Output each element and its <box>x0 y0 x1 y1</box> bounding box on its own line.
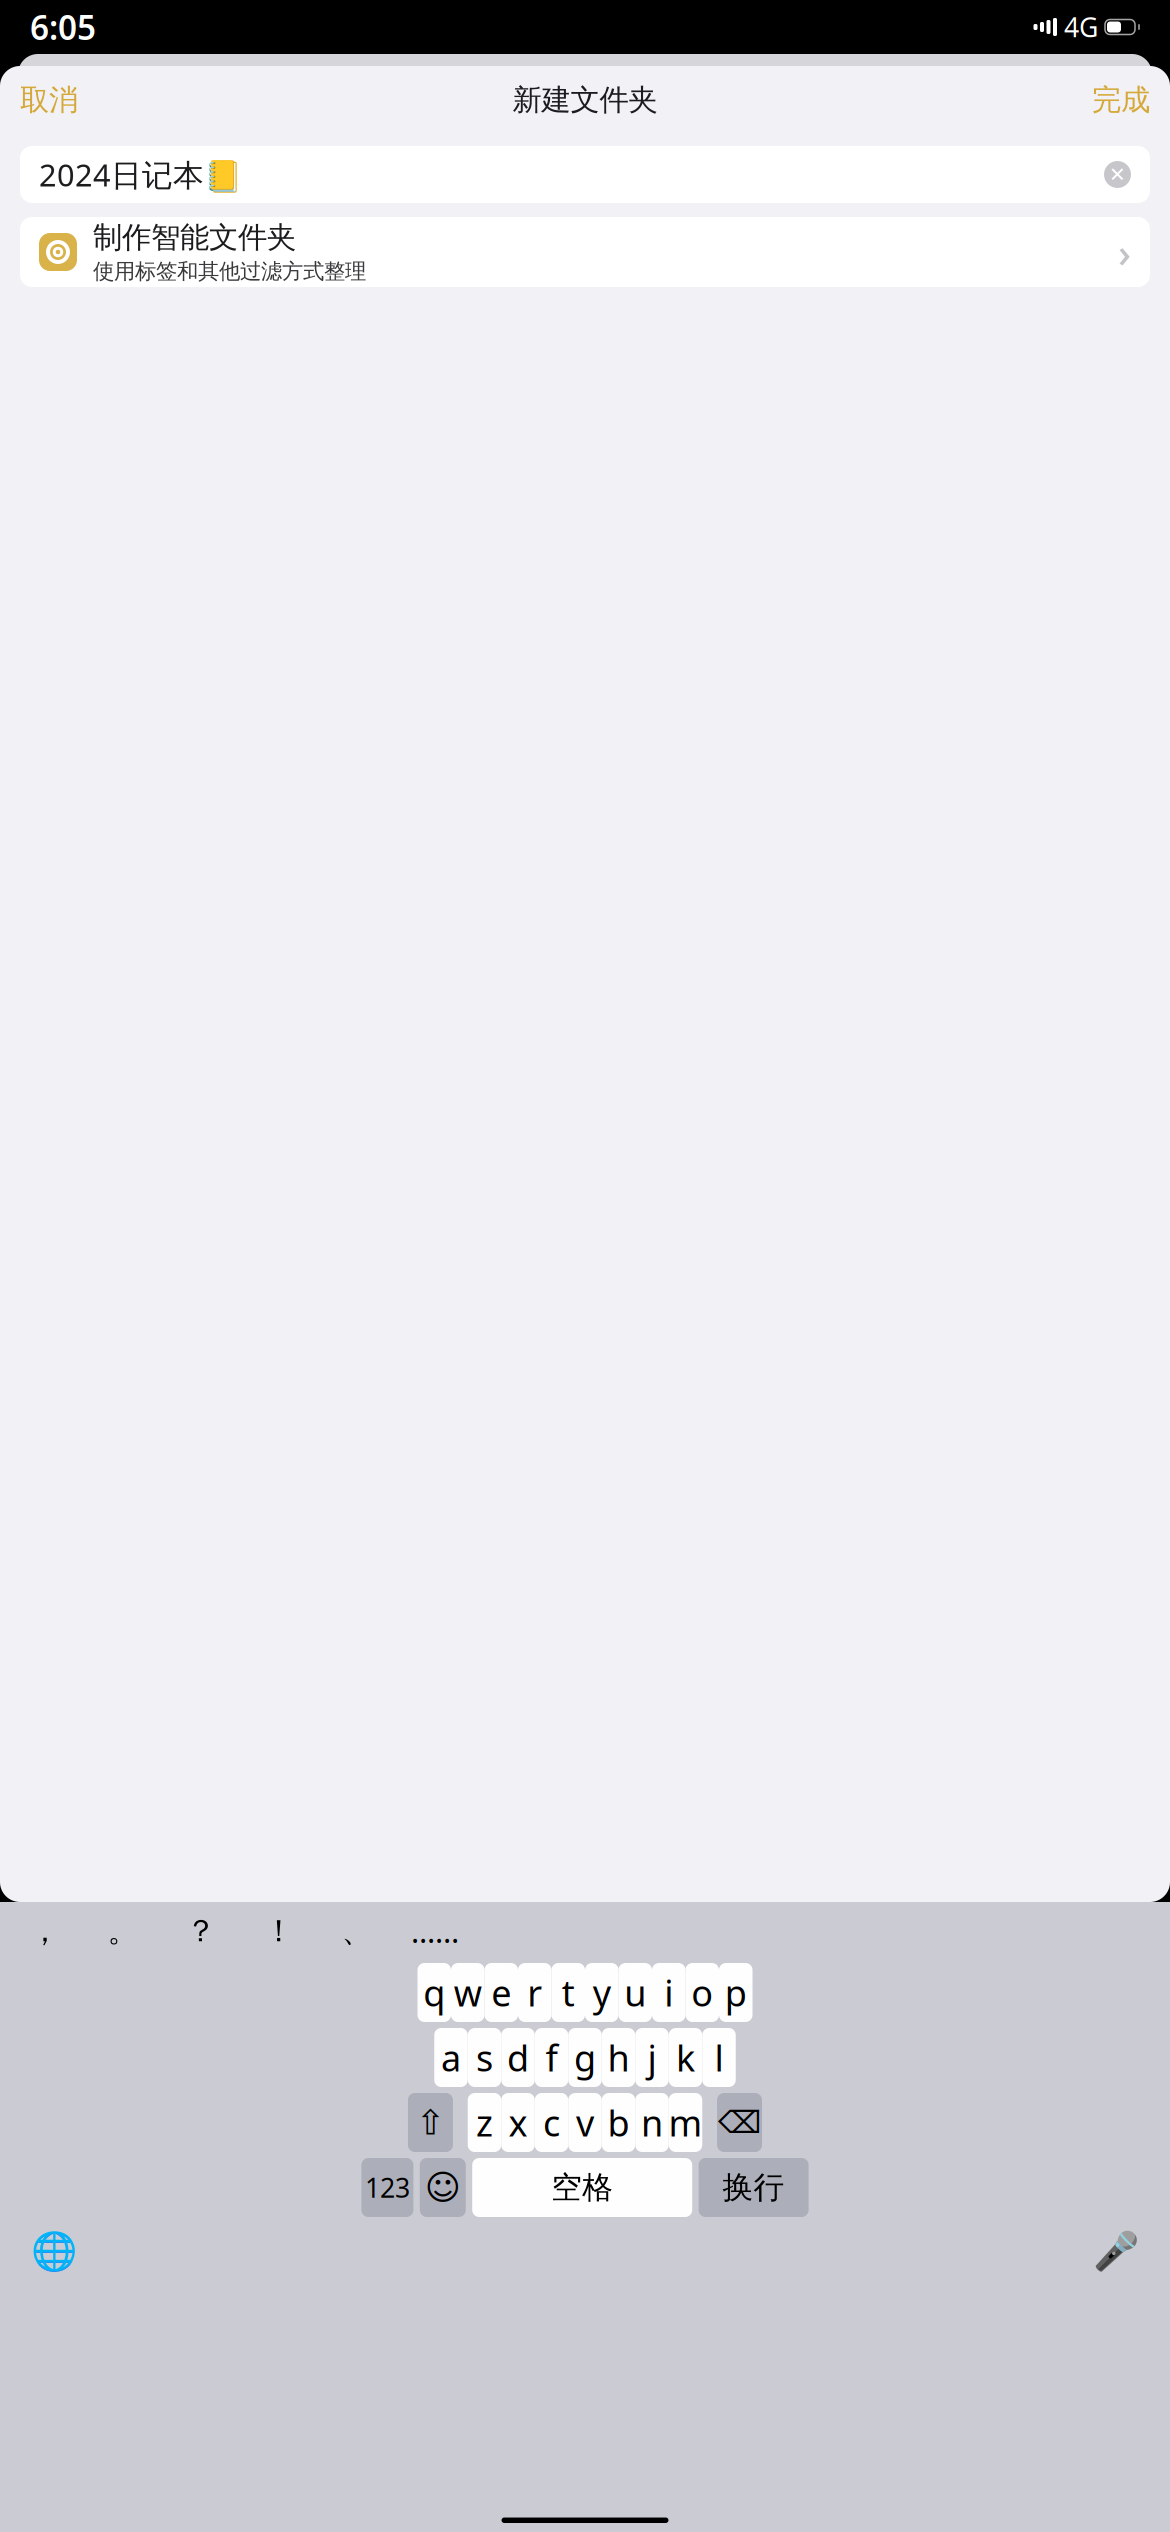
staticText: 换行 <box>723 2169 785 2206</box>
button[interactable]: q <box>417 1963 451 2022</box>
staticText: d <box>507 2034 529 2081</box>
button[interactable]: s <box>468 2028 501 2087</box>
staticText: f <box>545 2034 557 2081</box>
staticText: 🎤 <box>1093 2230 1139 2272</box>
staticText: ✕ <box>1109 163 1126 186</box>
staticText: z <box>476 2099 493 2146</box>
button[interactable]: ⌫ <box>717 2093 762 2152</box>
staticText: ？ <box>185 1912 216 1950</box>
button[interactable]: 取消 <box>14 76 84 124</box>
button[interactable]: 清除文本 <box>1104 161 1131 188</box>
staticText: l <box>714 2034 723 2081</box>
staticText: 、 <box>341 1912 372 1950</box>
button[interactable]: t <box>551 1963 585 2022</box>
button[interactable]: 123 <box>361 2158 413 2217</box>
button[interactable]: 换行 <box>699 2158 809 2217</box>
button[interactable]: 切换键盘 <box>26 2226 82 2276</box>
staticText: p <box>725 1969 747 2016</box>
staticText: 2024日记本📒 <box>39 154 242 195</box>
button[interactable]: ， <box>6 1908 84 1954</box>
staticText: y <box>593 1969 611 2016</box>
button[interactable]: 空格 <box>472 2158 692 2217</box>
button[interactable]: d <box>501 2028 535 2087</box>
staticText: 123 <box>365 2170 410 2205</box>
button[interactable]: g <box>568 2028 602 2087</box>
staticText: n <box>641 2099 663 2146</box>
button[interactable]: ⇧ <box>408 2093 453 2152</box>
button[interactable]: 完成 <box>1086 76 1156 124</box>
staticText: b <box>607 2099 629 2146</box>
button[interactable]: n <box>635 2093 669 2152</box>
button[interactable]: l <box>702 2028 736 2087</box>
staticText: e <box>491 1969 511 2016</box>
staticText: t <box>562 1969 575 2016</box>
button[interactable]: o <box>685 1963 719 2022</box>
button[interactable]: 制作智能文件夹 <box>20 217 1150 287</box>
staticText: ⇧ <box>416 2103 445 2142</box>
button[interactable]: c <box>535 2093 568 2152</box>
staticText: a <box>441 2034 461 2081</box>
staticText: 使用标签和其他过滤方式整理 <box>93 258 366 285</box>
button[interactable]: k <box>669 2028 702 2087</box>
staticText: 完成 <box>1092 82 1150 118</box>
button[interactable]: ！ <box>240 1908 318 1954</box>
button[interactable]: 、 <box>318 1908 396 1954</box>
button[interactable]: p <box>719 1963 752 2022</box>
button[interactable]: 。 <box>84 1908 162 1954</box>
staticText: › <box>1118 225 1131 278</box>
staticText: s <box>476 2034 493 2081</box>
button[interactable]: r <box>518 1963 551 2022</box>
staticText: ， <box>29 1912 60 1950</box>
staticText: 空格 <box>551 2169 613 2206</box>
staticText: c <box>543 2099 560 2146</box>
button[interactable]: j <box>635 2028 669 2087</box>
staticText: 6:05 <box>30 5 96 49</box>
button[interactable]: z <box>468 2093 501 2152</box>
button[interactable]: w <box>451 1963 484 2022</box>
button[interactable]: b <box>602 2093 635 2152</box>
staticText: ！ <box>263 1912 294 1950</box>
staticText: …… <box>411 1911 459 1951</box>
staticText: o <box>691 1969 713 2016</box>
button[interactable]: ？ <box>162 1908 240 1954</box>
staticText: 制作智能文件夹 <box>93 219 296 255</box>
staticText: i <box>664 1969 673 2016</box>
staticText: j <box>647 2034 656 2081</box>
staticText: 。 <box>107 1912 138 1950</box>
staticText: r <box>527 1969 542 2016</box>
button[interactable]: a <box>434 2028 468 2087</box>
button[interactable]: f <box>535 2028 568 2087</box>
staticText: 4G <box>1064 9 1098 45</box>
button[interactable]: x <box>501 2093 535 2152</box>
staticText: x <box>508 2099 527 2146</box>
staticText: u <box>624 1969 646 2016</box>
staticText: m <box>668 2099 702 2146</box>
staticText: 🌐 <box>31 2230 77 2272</box>
button[interactable]: h <box>602 2028 635 2087</box>
staticText: h <box>607 2034 629 2081</box>
button[interactable]: u <box>618 1963 652 2022</box>
staticText: ⌫ <box>718 2105 761 2140</box>
button[interactable]: i <box>652 1963 685 2022</box>
button[interactable]: y <box>585 1963 618 2022</box>
button[interactable]: e <box>484 1963 518 2022</box>
staticText: 新建文件夹 <box>512 82 657 118</box>
button[interactable]: v <box>568 2093 602 2152</box>
button[interactable]: ☺ <box>420 2158 466 2217</box>
staticText: q <box>423 1969 445 2016</box>
button[interactable]: m <box>669 2093 702 2152</box>
staticText: 取消 <box>20 82 78 118</box>
staticText: k <box>676 2034 695 2081</box>
button[interactable]: …… <box>396 1908 474 1954</box>
staticText: w <box>454 1969 482 2016</box>
staticText: ☺ <box>425 2168 461 2207</box>
staticText: v <box>576 2099 594 2146</box>
staticText: g <box>574 2034 596 2081</box>
button[interactable]: 语音输入 <box>1088 2226 1144 2276</box>
